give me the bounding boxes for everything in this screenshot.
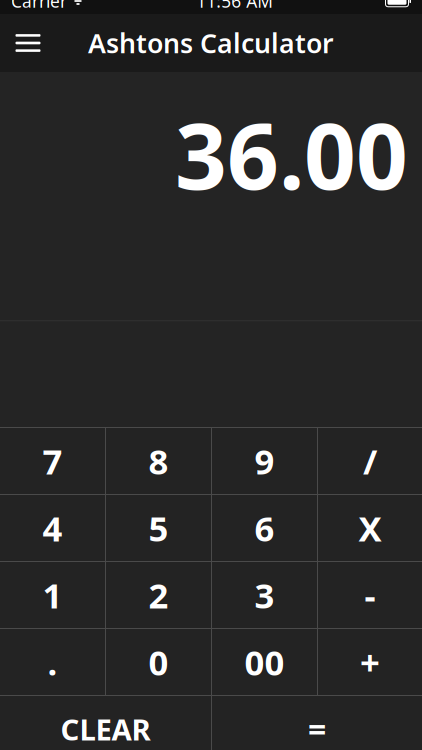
button[interactable]: X [318,495,422,561]
button[interactable]: = [212,696,422,750]
button[interactable]: 8 [106,428,211,494]
button[interactable]: 00 [212,629,317,695]
staticText: 5 [148,505,168,551]
button[interactable]: Menu [0,15,56,71]
button[interactable]: - [318,562,422,628]
staticText: 0 [148,639,168,685]
button[interactable]: 9 [212,428,317,494]
staticText: 6 [254,505,274,551]
staticText: 9 [254,438,274,484]
staticText: / [363,438,377,484]
button[interactable]: 2 [106,562,211,628]
staticText: 3 [254,572,274,618]
staticText: - [364,572,375,618]
button[interactable]: CLEAR [0,696,211,750]
button[interactable]: . [0,629,105,695]
button[interactable]: 7 [0,428,105,494]
staticText: X [358,505,381,551]
staticText: + [360,639,380,685]
button[interactable]: 6 [212,495,317,561]
button[interactable]: 5 [106,495,211,561]
staticText: 8 [148,438,168,484]
staticText: 36.00 [175,94,408,214]
staticText: Carrier [11,0,67,12]
button[interactable]: 4 [0,495,105,561]
staticText: 7 [42,438,62,484]
staticText: CLEAR [60,709,150,748]
staticText: 1 [42,572,62,618]
staticText: = [308,708,326,750]
button[interactable]: 3 [212,562,317,628]
staticText: . [47,639,57,685]
button[interactable]: 1 [0,562,105,628]
staticText: 4 [42,505,62,551]
staticText: Ashtons Calculator [88,25,334,61]
staticText: 2 [148,572,168,618]
button[interactable]: / [318,428,422,494]
staticText: 11:56 AM [196,0,273,12]
staticText: 00 [244,639,284,685]
button[interactable]: 0 [106,629,211,695]
button[interactable]: + [318,629,422,695]
